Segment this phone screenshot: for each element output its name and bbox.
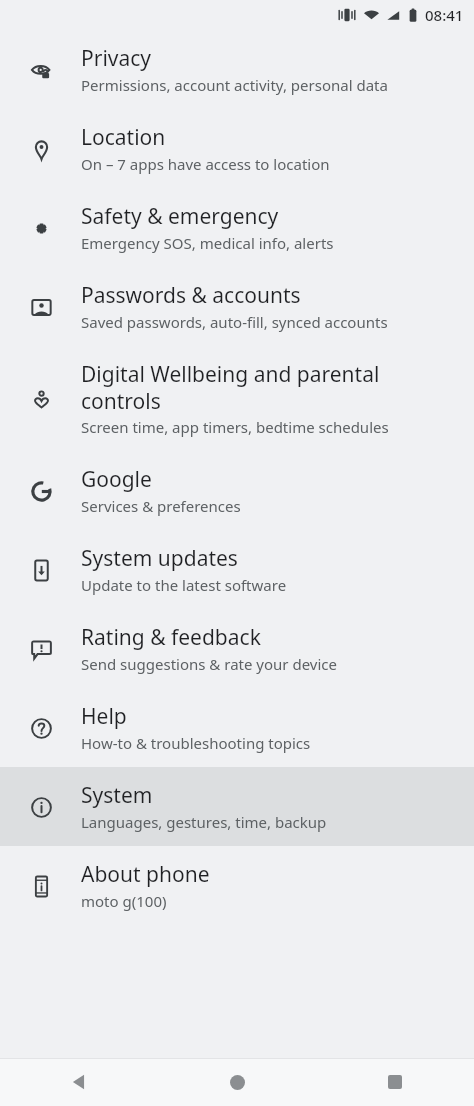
staticText: Passwords & accounts	[81, 281, 301, 310]
staticText: How-to & troubleshooting topics	[81, 733, 311, 753]
staticText: Services & preferences	[81, 496, 241, 516]
staticText: Google	[81, 465, 152, 494]
staticText: About phone	[81, 860, 210, 889]
button[interactable]: Home	[158, 1058, 316, 1106]
staticText: Location	[81, 123, 166, 152]
staticText: Privacy	[81, 44, 152, 73]
button[interactable]: Rating & feedback	[0, 609, 474, 688]
button[interactable]: Passwords & accounts	[0, 267, 474, 346]
staticText: Rating & feedback	[81, 623, 261, 652]
staticText: Languages, gestures, time, backup	[81, 812, 327, 832]
button[interactable]: About phone	[0, 846, 474, 925]
button[interactable]: Privacy	[0, 30, 474, 109]
staticText: System updates	[81, 544, 238, 573]
button[interactable]: Back	[0, 1058, 158, 1106]
button[interactable]: System updates	[0, 530, 474, 609]
staticText: Emergency SOS, medical info, alerts	[81, 233, 334, 253]
button[interactable]: Location	[0, 109, 474, 188]
staticText: System	[81, 781, 153, 810]
staticText: Update to the latest software	[81, 575, 287, 595]
staticText: Send suggestions & rate your device	[81, 654, 337, 674]
button[interactable]: System	[0, 767, 474, 846]
staticText: Digital Wellbeing and parental controls	[81, 360, 458, 415]
staticText: Help	[81, 702, 127, 731]
button[interactable]: Digital Wellbeing and parental controls	[0, 346, 474, 451]
button[interactable]: Google	[0, 451, 474, 530]
staticText: Saved passwords, auto-fill, synced accou…	[81, 312, 388, 332]
staticText: moto g(100)	[81, 891, 167, 911]
button[interactable]: Safety & emergency	[0, 188, 474, 267]
staticText: Screen time, app timers, bedtime schedul…	[81, 417, 389, 437]
button[interactable]: Help	[0, 688, 474, 767]
button[interactable]: Recent apps	[316, 1058, 474, 1106]
staticText: Permissions, account activity, personal …	[81, 75, 388, 95]
staticText: On – 7 apps have access to location	[81, 154, 330, 174]
staticText: Safety & emergency	[81, 202, 279, 231]
staticText: 08:41	[425, 5, 464, 25]
